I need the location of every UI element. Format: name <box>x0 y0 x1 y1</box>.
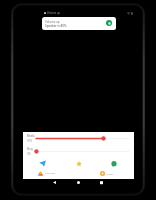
staticText: Ring <box>27 147 33 151</box>
staticText: 0% <box>27 152 31 156</box>
staticText: 70% <box>27 139 33 143</box>
staticText: Media <box>27 134 35 138</box>
button[interactable]: Home <box>74 178 82 186</box>
staticText: Settings <box>107 173 114 175</box>
button[interactable]: Media <box>23 133 134 144</box>
button[interactable]: Ring <box>23 146 134 157</box>
button[interactable]: Starred <box>73 158 84 169</box>
staticText: Volume up <box>47 11 61 15</box>
button[interactable]: WhatsApp <box>108 158 119 169</box>
button[interactable]: Recent apps <box>97 178 105 186</box>
staticText: Speaker is 80% <box>45 24 67 28</box>
button[interactable]: Back <box>50 178 58 186</box>
button[interactable]: Telegram <box>37 158 48 169</box>
button[interactable]: Settings <box>100 169 132 177</box>
staticText: Volume up <box>45 20 60 24</box>
button[interactable]: Share to Devices <box>38 169 82 177</box>
button[interactable]: Volume up <box>42 17 116 30</box>
staticText: Share to Devices <box>45 173 56 175</box>
button[interactable]: Volume up <box>44 11 61 15</box>
